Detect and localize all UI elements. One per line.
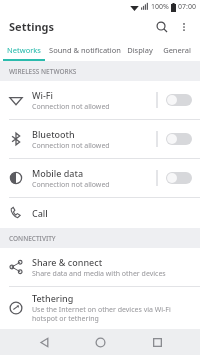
button[interactable]: Networks	[0, 39, 48, 61]
staticText: Share & connect	[32, 256, 103, 268]
staticText: Mobile data	[32, 167, 84, 179]
staticText: Display	[127, 45, 153, 55]
staticText: Call	[32, 207, 48, 219]
staticText: CONNECTIVITY	[9, 234, 56, 243]
button[interactable]: Home	[87, 329, 113, 355]
button[interactable]: Sound & notification	[48, 39, 122, 61]
button[interactable]: Tethering	[0, 292, 200, 323]
staticText: Share data and media with other devices	[32, 269, 166, 279]
button[interactable]: Mobile data toggle	[166, 172, 192, 184]
staticText: Connection not allowed	[32, 180, 110, 190]
button[interactable]: Back	[31, 329, 57, 355]
staticText: Bluetooth	[32, 128, 75, 140]
staticText: Connection not allowed	[32, 102, 110, 112]
button[interactable]: Recent apps	[144, 329, 170, 355]
button[interactable]: General	[158, 39, 196, 61]
button[interactable]: Search	[152, 17, 172, 37]
button[interactable]: Wi-Fi	[0, 81, 200, 119]
staticText: WIRELESS NETWORKS	[9, 67, 77, 76]
staticText: General	[163, 45, 191, 55]
staticText: Connection not allowed	[32, 141, 110, 151]
staticText: Use the Internet on other devices via Wi…	[32, 305, 192, 323]
staticText: Settings	[9, 19, 55, 34]
button[interactable]: Call	[0, 198, 200, 228]
button[interactable]: Mobile data	[0, 159, 200, 197]
staticText: Sound & notification	[49, 45, 121, 55]
button[interactable]: Bluetooth	[0, 120, 200, 158]
staticText: Networks	[7, 45, 41, 55]
staticText: Tethering	[32, 292, 74, 304]
button[interactable]: Display	[122, 39, 158, 61]
button[interactable]: Share & connect	[0, 253, 200, 281]
staticText: 07:00	[178, 2, 196, 12]
staticText: 100%	[151, 2, 169, 12]
button[interactable]: Bluetooth toggle	[166, 133, 192, 145]
button[interactable]: Wi-Fi toggle	[166, 94, 192, 106]
button[interactable]: More options	[174, 17, 194, 37]
staticText: Wi-Fi	[32, 89, 53, 101]
